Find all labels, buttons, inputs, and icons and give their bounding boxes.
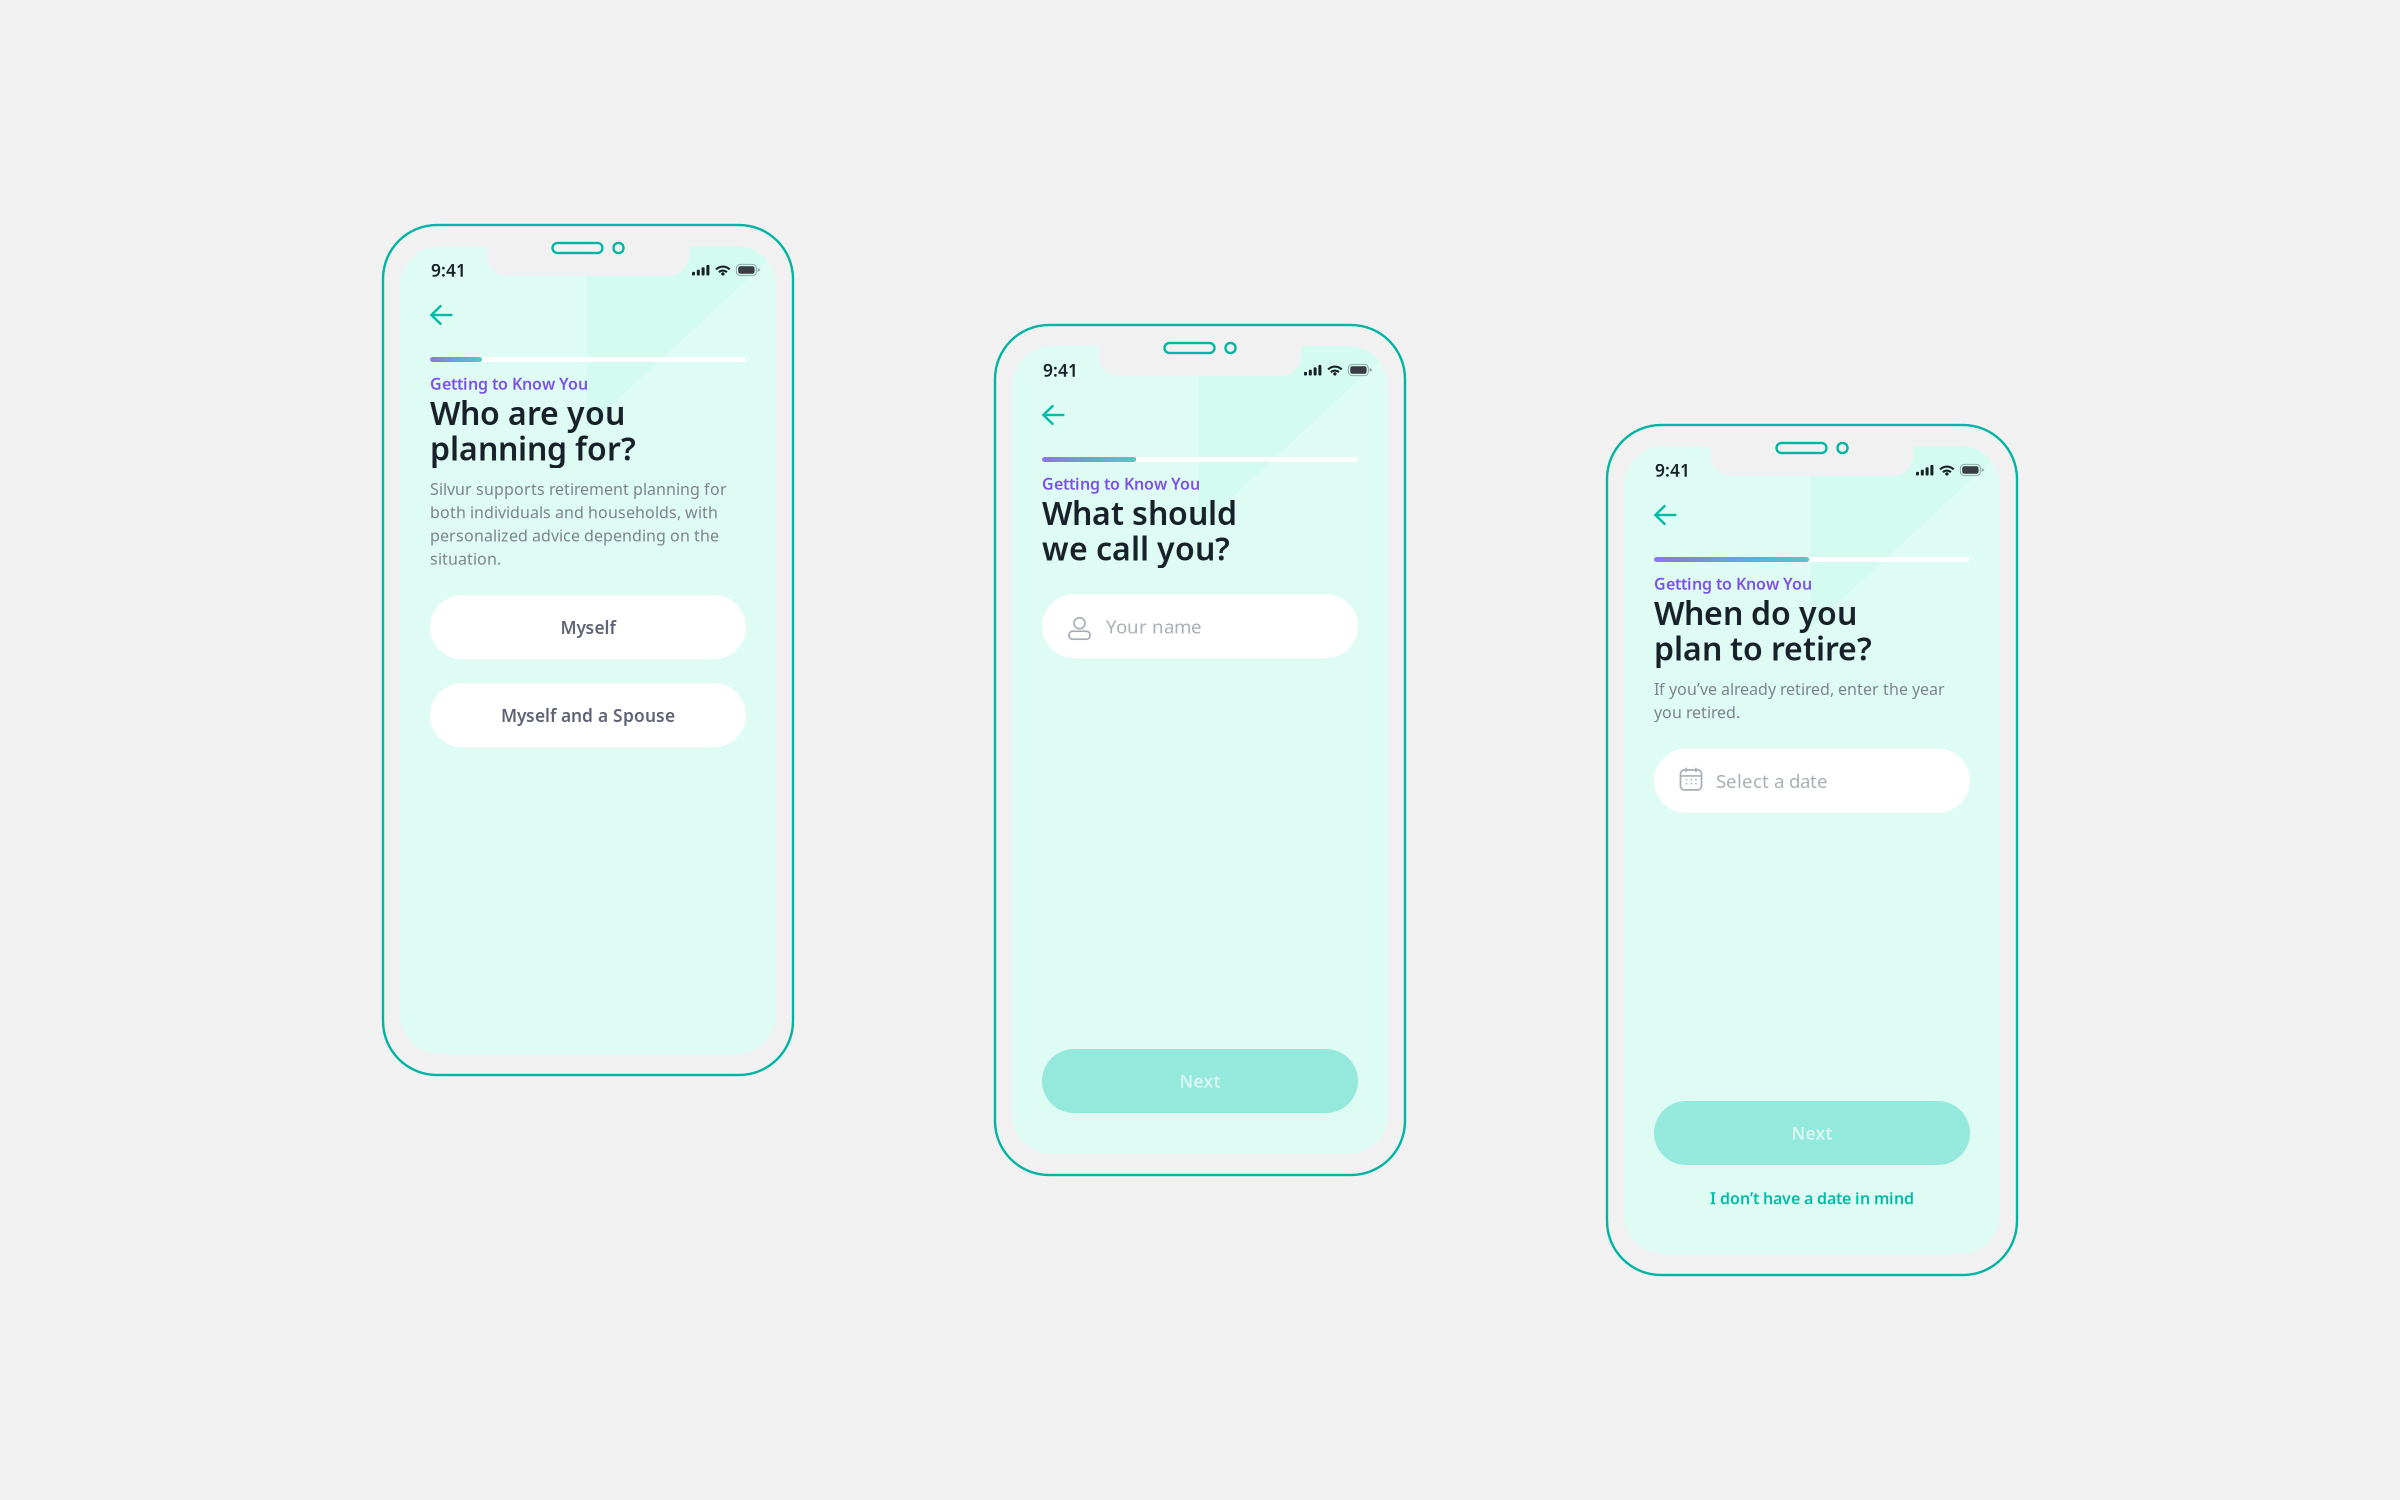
staticText: When do you: [1654, 591, 1857, 634]
button[interactable]: Myself: [430, 595, 746, 659]
staticText: Next: [1791, 1121, 1832, 1144]
staticText: we call you?: [1042, 527, 1230, 569]
staticText: If you’ve already retired, enter the yea…: [1654, 678, 1945, 699]
staticText: Who are you: [430, 391, 625, 434]
staticText: both individuals and households, with: [430, 501, 718, 523]
staticText: Myself and a Spouse: [501, 704, 675, 727]
staticText: Getting to Know You: [430, 373, 588, 394]
staticText: Your name: [1106, 614, 1202, 639]
button[interactable]: Myself and a Spouse: [430, 683, 746, 747]
staticText: personalized advice depending on the: [430, 525, 719, 546]
button[interactable]: Next: [1042, 1049, 1358, 1113]
button[interactable]: Your name: [1042, 594, 1358, 658]
staticText: plan to retire?: [1654, 627, 1872, 669]
staticText: Select a date: [1716, 768, 1828, 793]
staticText: Myself: [560, 616, 615, 639]
staticText: Next: [1179, 1069, 1220, 1092]
staticText: planning for?: [430, 427, 636, 469]
button[interactable]: Back: [1642, 493, 1690, 537]
staticText: 9:41: [1655, 458, 1690, 481]
staticText: Getting to Know You: [1042, 473, 1200, 494]
button[interactable]: Next: [1654, 1101, 1970, 1165]
staticText: 9:41: [431, 258, 466, 281]
staticText: I don’t have a date in mind: [1710, 1187, 1914, 1209]
button[interactable]: I don’t have a date in mind: [1654, 1189, 1970, 1207]
staticText: Getting to Know You: [1654, 573, 1812, 594]
staticText: 9:41: [1043, 358, 1078, 381]
staticText: Silvur supports retirement planning for: [430, 478, 727, 499]
staticText: situation.: [430, 548, 501, 569]
staticText: What should: [1042, 491, 1237, 534]
button[interactable]: Back: [1030, 393, 1078, 437]
button[interactable]: Back: [418, 293, 466, 337]
staticText: you retired.: [1654, 701, 1740, 723]
button[interactable]: Select a date: [1654, 749, 1970, 813]
